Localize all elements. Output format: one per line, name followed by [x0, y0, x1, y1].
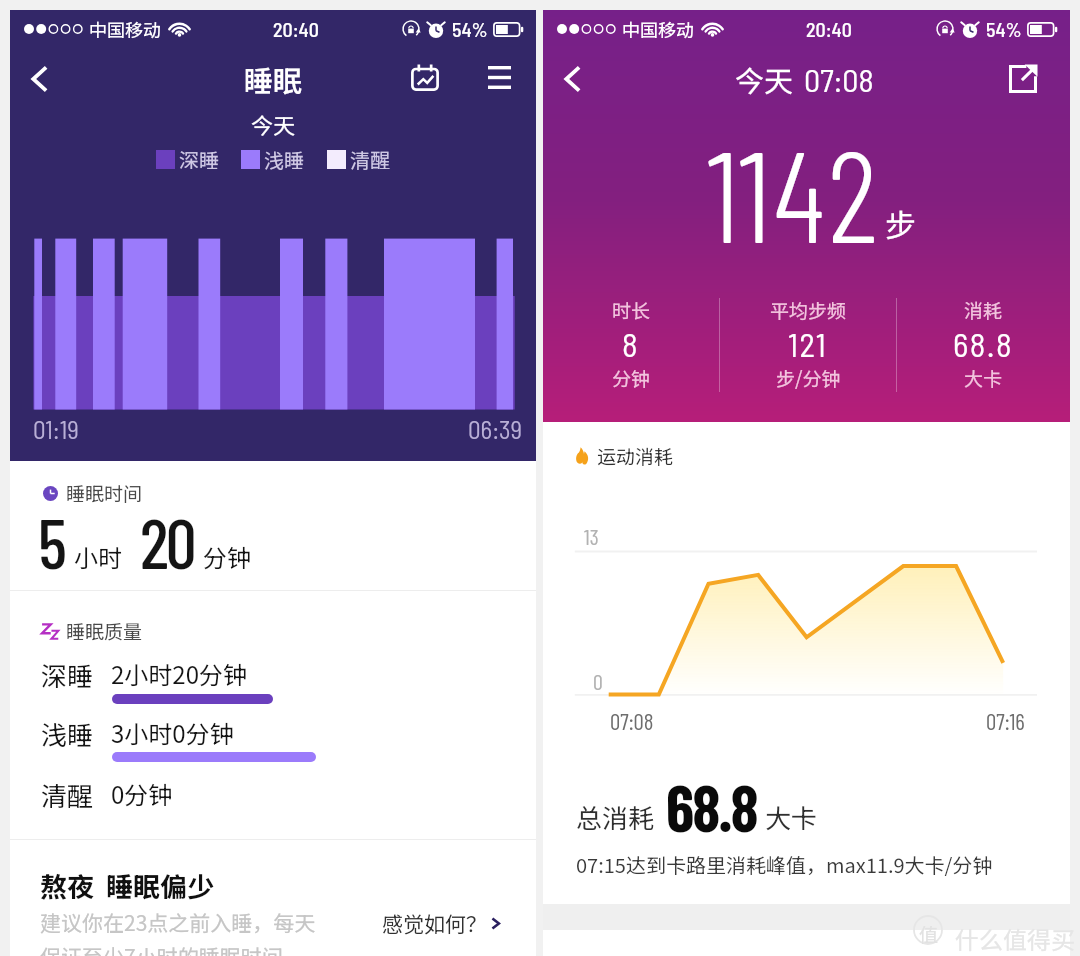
staticText: 深睡: [179, 145, 219, 174]
staticText: 运动消耗: [597, 442, 674, 470]
staticText: 清醒: [350, 145, 390, 174]
staticText: 0分钟: [111, 776, 173, 811]
staticText: 0: [593, 668, 603, 694]
staticText: 2小时20分钟: [111, 656, 247, 691]
staticText: 20:40: [806, 17, 852, 41]
staticText: 今天: [735, 58, 794, 100]
staticText: 06:39: [468, 414, 523, 444]
staticText: 07:08: [610, 707, 654, 735]
staticText: 07:08: [804, 60, 874, 98]
staticText: 68.8: [953, 324, 1014, 364]
staticText: 值: [919, 920, 939, 948]
staticText: 建议你在23点之前入睡，每天: [40, 907, 316, 937]
staticText: 总消耗: [576, 798, 655, 836]
staticText: 8: [622, 324, 640, 364]
staticText: 20:40: [273, 17, 319, 41]
staticText: 什么值得买: [955, 921, 1075, 956]
staticText: 时长: [612, 296, 651, 324]
staticText: 步/分钟: [776, 364, 841, 392]
staticText: 121: [788, 324, 828, 364]
button[interactable]: Menu: [470, 48, 528, 106]
staticText: 13: [584, 523, 599, 549]
staticText: 今天: [10, 108, 536, 140]
staticText: 中国移动: [622, 16, 694, 42]
button[interactable]: Back: [543, 48, 601, 110]
staticText: 浅睡: [264, 145, 304, 174]
staticText: 大卡: [964, 364, 1003, 392]
staticText: 大卡: [765, 798, 818, 836]
staticText: 分钟: [612, 364, 651, 392]
staticText: 深睡: [41, 656, 94, 694]
staticText: 感觉如何？: [382, 908, 487, 938]
staticText: 熬夜 睡眠偏少: [40, 866, 215, 905]
staticText: 07:15达到卡路里消耗峰值，max11.9大卡/分钟: [576, 850, 993, 879]
staticText: 54%: [986, 17, 1022, 41]
staticText: 睡眠时间: [66, 479, 143, 507]
staticText: 小时: [74, 539, 122, 574]
staticText: 平均步频: [770, 296, 847, 324]
staticText: 步: [885, 201, 916, 246]
staticText: 20: [140, 500, 194, 583]
staticText: 消耗: [964, 296, 1003, 324]
staticText: 浅睡: [41, 715, 94, 753]
staticText: 睡眠质量: [66, 617, 143, 645]
button[interactable]: 感觉如何？: [382, 908, 504, 938]
staticText: 睡眠: [244, 58, 303, 100]
staticText: 54%: [452, 17, 488, 41]
staticText: 1142: [707, 115, 881, 269]
staticText: 3小时0分钟: [111, 715, 234, 750]
staticText: 分钟: [203, 539, 251, 574]
staticText: 01:19: [33, 414, 79, 444]
staticText: 清醒: [41, 776, 94, 814]
button[interactable]: Statistics: [380, 46, 470, 108]
staticText: 保证至少7小时的睡眠时间: [40, 941, 283, 956]
staticText: 中国移动: [89, 16, 161, 42]
button[interactable]: Share: [992, 48, 1054, 110]
staticText: 68.8: [666, 768, 757, 845]
button[interactable]: Back: [10, 48, 68, 110]
staticText: 5: [38, 500, 65, 583]
staticText: 07:16: [986, 707, 1025, 735]
